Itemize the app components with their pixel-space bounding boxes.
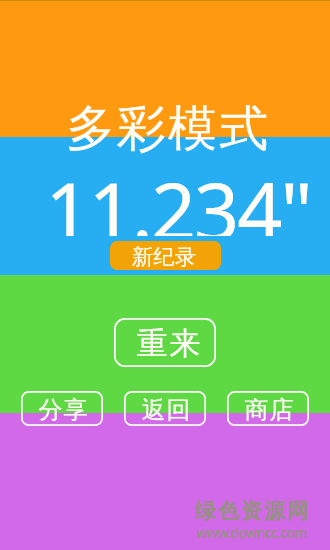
button[interactable]: 分享 — [21, 391, 103, 426]
staticText: 返回 — [141, 395, 191, 425]
staticText: 重来 — [136, 324, 201, 363]
staticText: 商店 — [244, 395, 294, 425]
staticText: 分享 — [38, 395, 88, 425]
staticText: 11.234" — [45, 156, 311, 236]
button[interactable]: 返回 — [124, 391, 206, 426]
button[interactable]: 新纪录 — [110, 241, 221, 270]
staticText: 绿色资源网 — [194, 498, 309, 522]
staticText: www.downcc.com — [196, 523, 307, 541]
staticText: 新纪录 — [132, 244, 196, 270]
staticText: 多彩模式 — [65, 98, 269, 158]
button[interactable]: 重来 — [114, 318, 216, 367]
button[interactable]: 商店 — [227, 391, 309, 426]
